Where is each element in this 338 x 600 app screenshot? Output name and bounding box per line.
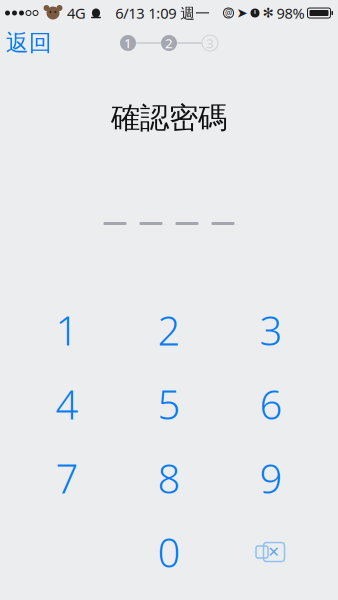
staticText: 4 xyxy=(55,377,78,431)
staticText: 0 xyxy=(157,525,180,579)
staticText: 2 xyxy=(157,303,180,357)
staticText: 返回 xyxy=(6,29,52,57)
staticText: 98% xyxy=(276,3,304,23)
staticText: 9 xyxy=(259,451,282,505)
button[interactable]: 7 xyxy=(17,441,117,515)
button[interactable]: 4 xyxy=(17,367,117,441)
button[interactable]: 8 xyxy=(119,441,219,515)
staticText: 8 xyxy=(157,451,180,505)
staticText: 5 xyxy=(157,377,180,431)
staticText: @ xyxy=(225,8,232,18)
button[interactable]: 2 xyxy=(119,293,219,367)
staticText: 3 xyxy=(206,34,214,52)
button[interactable]: 3 xyxy=(221,293,321,367)
button[interactable]: 0 xyxy=(119,515,219,589)
staticText: 確認密碼 xyxy=(111,100,227,136)
button[interactable]: 6 xyxy=(221,367,321,441)
button[interactable]: 9 xyxy=(221,441,321,515)
button[interactable]: Delete xyxy=(221,515,321,589)
staticText: 2 xyxy=(165,34,173,52)
button[interactable]: 返回 xyxy=(0,25,52,61)
staticText: 1 xyxy=(124,34,132,52)
staticText: 3 xyxy=(259,303,282,357)
staticText: 6 xyxy=(259,377,282,431)
button[interactable]: 5 xyxy=(119,367,219,441)
staticText: 4G xyxy=(67,3,86,23)
staticText: ➤ xyxy=(236,5,247,20)
staticText: 7 xyxy=(55,451,78,505)
staticText: ✕ xyxy=(267,544,279,560)
staticText: ✻ xyxy=(262,5,273,20)
button[interactable]: 1 xyxy=(17,293,117,367)
staticText: 6/13 1:09 週一 xyxy=(115,3,210,23)
staticText: 1 xyxy=(55,303,78,357)
